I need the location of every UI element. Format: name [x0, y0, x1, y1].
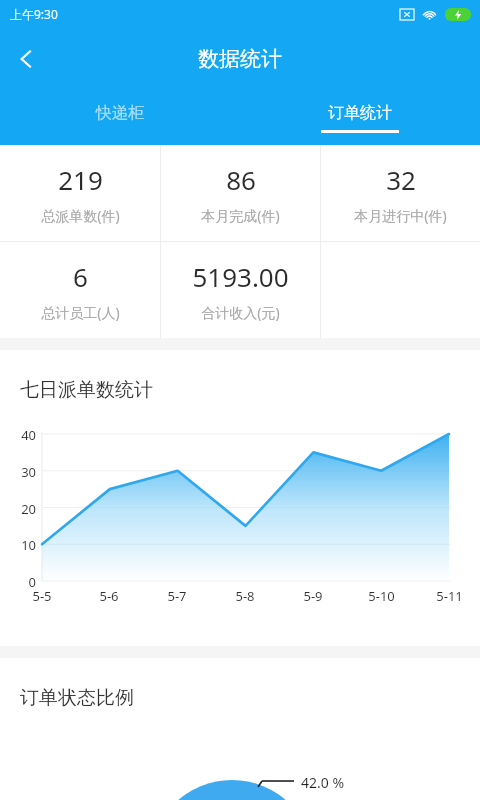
- staticText: 5-6: [99, 587, 119, 605]
- staticText: 订单状态比例: [20, 686, 134, 710]
- staticText: 5-9: [303, 587, 323, 605]
- staticText: 上午9:30: [10, 6, 58, 22]
- staticText: 20: [0, 500, 36, 518]
- staticText: 5-11: [436, 587, 463, 605]
- staticText: 5-7: [167, 587, 187, 605]
- staticText: 快递柜: [96, 103, 144, 123]
- staticText: 5193.00: [192, 259, 289, 294]
- staticText: 32: [386, 162, 416, 197]
- button[interactable]: 快递柜: [0, 90, 240, 145]
- staticText: 5-8: [235, 587, 255, 605]
- staticText: 40: [0, 426, 36, 444]
- button[interactable]: Back: [0, 33, 52, 85]
- staticText: 订单统计: [328, 103, 392, 123]
- staticText: 本月完成(件): [201, 206, 280, 225]
- staticText: 86: [226, 162, 256, 197]
- button[interactable]: 219: [0, 145, 160, 241]
- staticText: 30: [0, 463, 36, 481]
- staticText: 总计员工(人): [41, 303, 120, 322]
- staticText: 10: [0, 536, 36, 554]
- staticText: 合计收入(元): [201, 303, 280, 322]
- button[interactable]: 6: [0, 242, 160, 338]
- button[interactable]: 订单统计: [240, 90, 480, 145]
- staticText: 0: [0, 573, 36, 591]
- staticText: 219: [58, 162, 103, 197]
- staticText: 42.0 %: [301, 773, 345, 792]
- staticText: 5-10: [368, 587, 395, 605]
- button[interactable]: 86: [161, 145, 320, 241]
- button[interactable]: 5193.00: [161, 242, 320, 338]
- staticText: 本月进行中(件): [354, 206, 447, 225]
- staticText: 七日派单数统计: [20, 378, 153, 402]
- staticText: 数据统计: [198, 46, 282, 72]
- staticText: 6: [73, 259, 88, 294]
- button[interactable]: 32: [321, 145, 480, 241]
- staticText: 5-5: [32, 587, 52, 605]
- staticText: 总派单数(件): [41, 206, 120, 225]
